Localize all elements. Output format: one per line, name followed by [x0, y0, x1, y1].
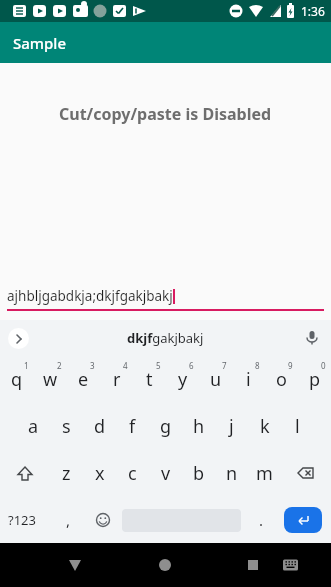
- button[interactable]: [221, 543, 331, 587]
- staticText: 8: [255, 360, 260, 371]
- button[interactable]: c: [116, 450, 149, 497]
- button[interactable]: j: [215, 403, 248, 450]
- button[interactable]: g: [149, 403, 182, 450]
- staticText: 4: [123, 360, 128, 371]
- button[interactable]: e: [67, 356, 100, 403]
- staticText: r: [113, 367, 121, 392]
- staticText: 1:36: [301, 3, 325, 19]
- staticText: b: [193, 461, 205, 486]
- staticText: q: [11, 367, 23, 392]
- staticText: y: [178, 367, 188, 392]
- button[interactable]: a: [17, 403, 50, 450]
- button[interactable]: h: [182, 403, 215, 450]
- staticText: d: [94, 414, 106, 439]
- staticText: n: [226, 461, 238, 486]
- button[interactable]: [111, 543, 221, 587]
- button[interactable]: [305, 331, 319, 345]
- staticText: s: [62, 414, 71, 439]
- button[interactable]: ajhbljgabdkja;dkjfgakjbakj: [0, 287, 331, 305]
- staticText: Cut/copy/paste is Disabled: [59, 103, 272, 125]
- button[interactable]: q: [0, 356, 34, 403]
- staticText: x: [95, 461, 105, 486]
- button[interactable]: ,: [66, 510, 71, 530]
- button[interactable]: f: [116, 403, 149, 450]
- staticText: g: [160, 414, 172, 439]
- staticText: a: [28, 414, 39, 439]
- button[interactable]: p: [298, 356, 331, 403]
- button[interactable]: y: [166, 356, 199, 403]
- button[interactable]: [0, 450, 50, 497]
- button[interactable]: [284, 507, 322, 533]
- staticText: f: [129, 414, 136, 439]
- staticText: h: [193, 414, 205, 439]
- staticText: p: [309, 367, 321, 392]
- button[interactable]: t: [133, 356, 166, 403]
- button[interactable]: n: [215, 450, 248, 497]
- staticText: 0: [321, 360, 326, 371]
- staticText: 9: [288, 360, 293, 371]
- button[interactable]: v: [149, 450, 182, 497]
- staticText: 2: [57, 360, 62, 371]
- button[interactable]: w: [34, 356, 67, 403]
- button[interactable]: dkjfgakjbakj: [127, 329, 204, 347]
- button[interactable]: m: [248, 450, 281, 497]
- staticText: i: [246, 367, 251, 392]
- staticText: w: [43, 367, 58, 392]
- staticText: c: [128, 461, 137, 486]
- button[interactable]: d: [83, 403, 116, 450]
- staticText: 6: [189, 360, 194, 371]
- staticText: t: [146, 367, 153, 392]
- button[interactable]: [281, 450, 331, 497]
- staticText: 3: [90, 360, 95, 371]
- staticText: u: [210, 367, 222, 392]
- button[interactable]: [0, 543, 111, 587]
- button[interactable]: s: [50, 403, 83, 450]
- button[interactable]: l: [281, 403, 314, 450]
- staticText: ajhbljgabdkja;dkjfgakjbakj: [7, 287, 173, 305]
- button[interactable]: ?123: [8, 511, 36, 529]
- staticText: 7: [222, 360, 227, 371]
- button[interactable]: .: [259, 510, 264, 530]
- staticText: v: [161, 461, 171, 486]
- button[interactable]: [8, 328, 29, 349]
- staticText: 1: [24, 360, 29, 371]
- staticText: k: [260, 414, 270, 439]
- button[interactable]: b: [182, 450, 215, 497]
- button[interactable]: r: [100, 356, 133, 403]
- staticText: m: [256, 461, 273, 486]
- staticText: z: [62, 461, 71, 486]
- staticText: l: [295, 414, 300, 439]
- button[interactable]: x: [83, 450, 116, 497]
- staticText: o: [276, 367, 287, 392]
- staticText: Sample: [13, 33, 66, 53]
- button[interactable]: k: [248, 403, 281, 450]
- button[interactable]: i: [232, 356, 265, 403]
- staticText: e: [78, 367, 89, 392]
- button[interactable]: o: [265, 356, 298, 403]
- staticText: 5: [156, 360, 161, 371]
- button[interactable]: [96, 513, 110, 527]
- button[interactable]: u: [199, 356, 232, 403]
- staticText: j: [229, 414, 234, 439]
- button[interactable]: z: [50, 450, 83, 497]
